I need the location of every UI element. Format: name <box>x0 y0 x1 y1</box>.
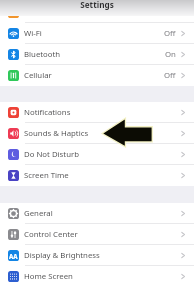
button[interactable]: Home Screen <box>0 266 194 287</box>
button[interactable]: Control Center <box>0 224 194 245</box>
button[interactable]: General <box>0 203 194 224</box>
button[interactable]: Screen Time <box>0 165 194 186</box>
button[interactable] <box>0 0 194 23</box>
staticText: Wi-Fi <box>24 28 42 39</box>
staticText: Off <box>164 70 176 81</box>
staticText: Cellular <box>24 70 52 81</box>
staticText: Home Screen <box>24 271 73 282</box>
staticText: Settings <box>80 0 114 10</box>
staticText: Screen Time <box>24 170 69 181</box>
staticText: General <box>24 208 53 219</box>
staticText: Control Center <box>24 229 78 240</box>
button[interactable]: Wi-Fi <box>0 23 194 44</box>
button[interactable]: Cellular <box>0 65 194 86</box>
staticText: AA <box>9 252 18 260</box>
staticText: Do Not Disturb <box>24 149 80 160</box>
button[interactable]: Sounds & Haptics <box>0 123 194 144</box>
button[interactable]: Bluetooth <box>0 44 194 65</box>
staticText: Notifications <box>24 107 71 118</box>
staticText: Display & Brightness <box>24 250 100 261</box>
staticText: On <box>165 49 176 60</box>
button[interactable]: AA <box>0 245 194 266</box>
button[interactable]: Notifications <box>0 102 194 123</box>
staticText: Bluetooth <box>24 49 61 60</box>
staticText: Off <box>164 28 176 39</box>
staticText: Sounds & Haptics <box>24 128 89 139</box>
button[interactable]: Do Not Disturb <box>0 144 194 165</box>
